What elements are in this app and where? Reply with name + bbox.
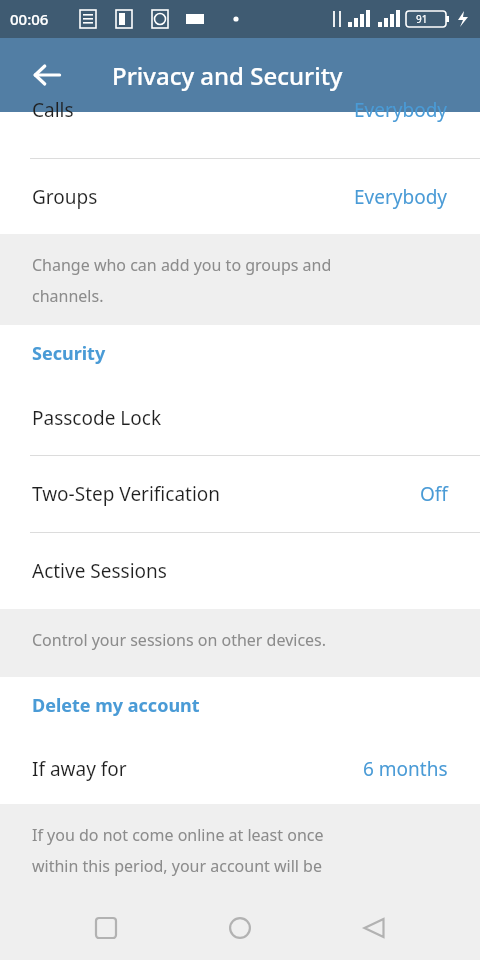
staticText: Everybody <box>354 184 448 210</box>
staticText: Change who can add you to groups and cha… <box>32 254 332 307</box>
staticText: Privacy and Security <box>112 59 343 92</box>
staticText: 00:06 <box>10 9 49 29</box>
staticText: Everybody <box>354 97 448 123</box>
staticText: If you do not come online at least once … <box>32 824 324 877</box>
staticText: Active Sessions <box>32 558 167 584</box>
staticText: Off <box>420 481 448 507</box>
button[interactable]: Calls <box>0 112 480 158</box>
staticText: Security <box>32 341 106 366</box>
staticText: Passcode Lock <box>32 405 162 431</box>
staticText: Delete my account <box>32 693 200 718</box>
staticText: If away for <box>32 756 127 782</box>
staticText: Control your sessions on other devices. <box>32 629 327 651</box>
button[interactable]: Back <box>346 900 402 956</box>
staticText: 6 months <box>363 756 448 782</box>
button[interactable]: Recent apps <box>78 900 134 956</box>
staticText: Groups <box>32 184 98 210</box>
staticText: Two-Step Verification <box>32 481 221 507</box>
staticText: Calls <box>32 97 74 123</box>
button[interactable]: Two-Step Verification <box>0 456 480 532</box>
button[interactable]: If away for <box>0 733 480 804</box>
button[interactable]: Back <box>20 48 74 102</box>
button[interactable]: Home <box>212 900 268 956</box>
button[interactable]: Passcode Lock <box>0 381 480 455</box>
button[interactable]: Active Sessions <box>0 533 480 609</box>
button[interactable]: Groups <box>0 159 480 234</box>
staticText: 91 <box>416 12 428 26</box>
